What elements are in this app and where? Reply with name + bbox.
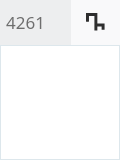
button[interactable]: Signal (71, 0, 120, 45)
staticText: 4261 (6, 11, 45, 34)
button[interactable]: 4261 (0, 0, 71, 45)
